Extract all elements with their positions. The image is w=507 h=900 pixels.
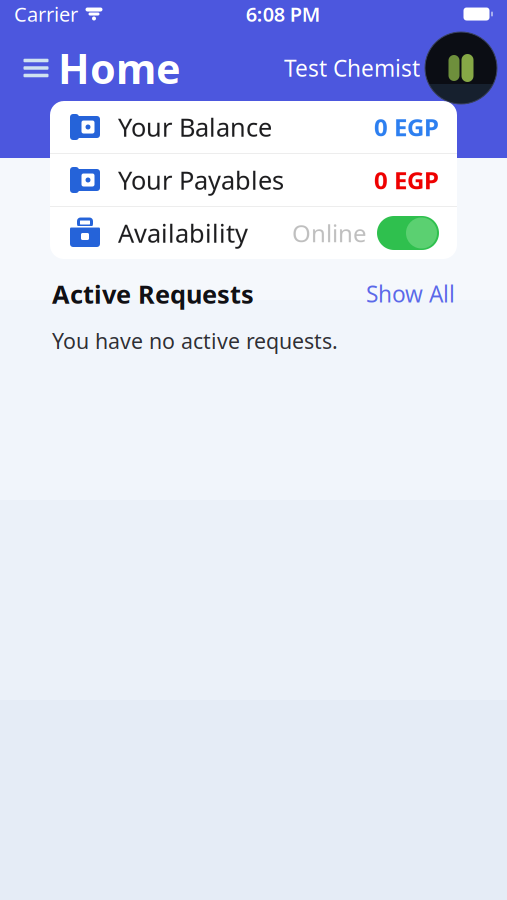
button[interactable]: Test Chemist xyxy=(284,32,497,104)
staticText: Your Payables xyxy=(118,163,284,197)
staticText: Carrier xyxy=(14,1,78,27)
button[interactable]: Your Balance xyxy=(50,101,457,153)
button[interactable]: Show All xyxy=(366,279,455,309)
staticText: Online xyxy=(292,217,367,249)
button[interactable]: Availability toggle xyxy=(377,216,439,250)
staticText: Your Balance xyxy=(118,110,272,144)
button[interactable]: Your Payables xyxy=(50,154,457,206)
staticText: 0 EGP xyxy=(374,111,439,143)
staticText: Home xyxy=(58,41,181,95)
staticText: 0 EGP xyxy=(374,164,439,196)
staticText: You have no active requests. xyxy=(52,327,338,355)
staticText: Availability xyxy=(118,216,248,250)
button[interactable]: Menu xyxy=(14,46,58,90)
staticText: Show All xyxy=(366,279,455,309)
staticText: Test Chemist xyxy=(284,53,420,83)
staticText: Active Requests xyxy=(52,277,254,311)
staticText: 6:08 PM xyxy=(246,1,321,27)
